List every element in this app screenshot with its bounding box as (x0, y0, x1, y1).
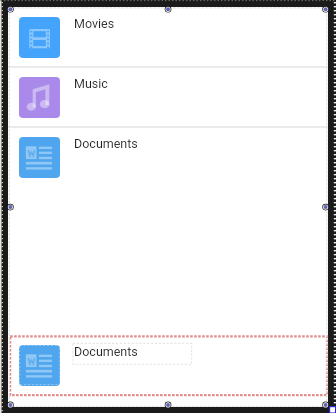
staticText: Music (74, 76, 108, 91)
button[interactable]: Documents icon (8, 335, 328, 395)
staticText: Documents (74, 136, 138, 151)
staticText: Movies (74, 16, 115, 31)
staticText: Documents (74, 344, 138, 359)
button[interactable]: Movies (8, 7, 328, 67)
button[interactable]: Music (8, 67, 328, 127)
other: Documents icon (19, 345, 60, 386)
button[interactable]: Documents (8, 127, 328, 187)
